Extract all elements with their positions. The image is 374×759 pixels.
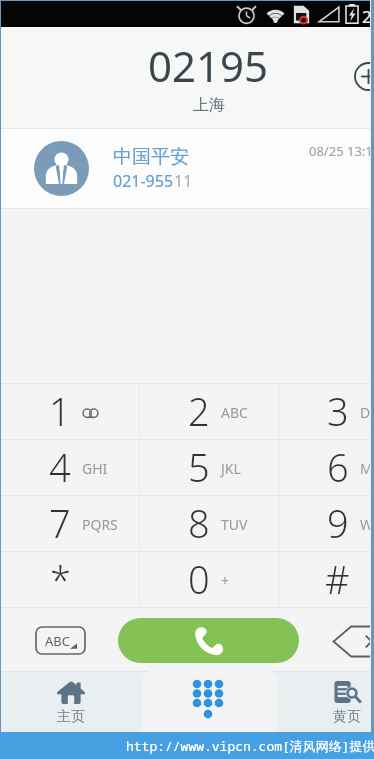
button[interactable]: 6 bbox=[279, 440, 374, 495]
staticText: PQRS bbox=[82, 515, 118, 534]
button[interactable]: Switch to ABC keyboard bbox=[35, 626, 86, 655]
staticText: ABC bbox=[221, 403, 248, 422]
button[interactable]: 4 bbox=[1, 440, 139, 495]
staticText: 0 bbox=[188, 553, 210, 605]
staticText: 主页 bbox=[57, 708, 85, 726]
button[interactable]: 1 bbox=[1, 384, 139, 439]
staticText: 11 bbox=[174, 170, 193, 192]
staticText: 3 bbox=[327, 385, 349, 437]
button[interactable]: 0 bbox=[140, 552, 278, 607]
staticText: 5 bbox=[188, 441, 210, 493]
staticText: 1 bbox=[49, 385, 71, 437]
staticText: + bbox=[221, 571, 230, 590]
staticText: GHI bbox=[82, 459, 108, 478]
staticText: 中国平安 bbox=[113, 145, 189, 169]
staticText: 8 bbox=[188, 497, 210, 549]
button[interactable]: 3 bbox=[279, 384, 374, 439]
staticText: TUV bbox=[221, 515, 248, 534]
staticText: WXYZ bbox=[360, 515, 374, 534]
button[interactable]: # bbox=[279, 552, 374, 607]
button[interactable]: 5 bbox=[140, 440, 278, 495]
button[interactable]: 黄页 bbox=[278, 671, 374, 732]
button[interactable]: 中国平安 bbox=[1, 128, 374, 209]
staticText: 黄页 bbox=[333, 708, 361, 726]
button[interactable]: 9 bbox=[279, 496, 374, 551]
staticText: 9 bbox=[327, 497, 349, 549]
staticText: MNO bbox=[360, 459, 374, 478]
staticText: 7 bbox=[49, 497, 71, 549]
staticText: DEF bbox=[360, 403, 374, 422]
staticText: 2 bbox=[188, 385, 210, 437]
button[interactable]: 2 bbox=[140, 384, 278, 439]
staticText: 6 bbox=[327, 441, 349, 493]
staticText: ABC bbox=[45, 632, 70, 650]
button[interactable]: Delete bbox=[332, 625, 374, 658]
staticText: 2 bbox=[362, 5, 372, 28]
button[interactable]: * bbox=[1, 552, 139, 607]
button[interactable]: Add contact bbox=[354, 62, 374, 91]
staticText: 上海 bbox=[193, 95, 225, 115]
staticText: # bbox=[325, 553, 350, 605]
staticText: 02195 bbox=[148, 37, 269, 94]
staticText: 08/25 13:12 bbox=[309, 142, 374, 160]
staticText: 021-955 bbox=[113, 170, 174, 192]
staticText: http://www.vipcn.com[清风网络]提供 bbox=[126, 737, 374, 755]
button[interactable]: Call bbox=[118, 618, 299, 663]
staticText: JKL bbox=[221, 459, 241, 478]
staticText: 4 bbox=[49, 441, 71, 493]
staticText: * bbox=[50, 553, 71, 605]
button[interactable]: Dialpad bbox=[142, 671, 278, 732]
button[interactable]: 主页 bbox=[1, 671, 141, 732]
button[interactable]: 7 bbox=[1, 496, 139, 551]
button[interactable]: 8 bbox=[140, 496, 278, 551]
